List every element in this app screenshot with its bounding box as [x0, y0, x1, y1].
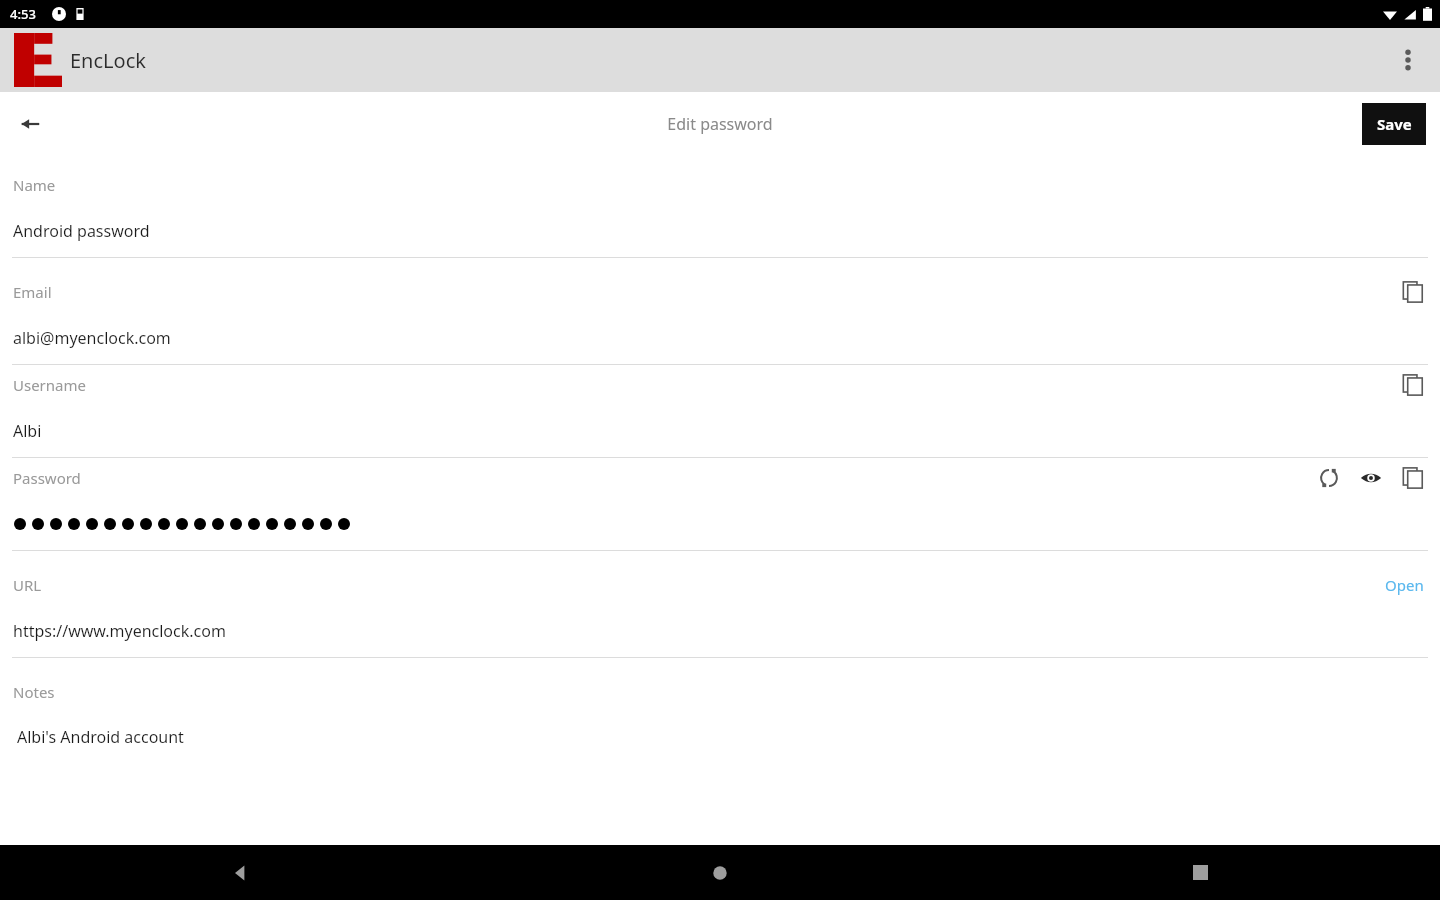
staticText: albi@myenclock.com: [13, 327, 171, 349]
staticText: Name: [13, 175, 56, 195]
staticText: Notes: [13, 682, 55, 702]
button[interactable]: Back: [0, 845, 480, 900]
staticText: https://www.myenclock.com: [13, 620, 226, 642]
button[interactable]: Open: [1379, 565, 1430, 605]
button[interactable]: More options: [1384, 36, 1432, 84]
button[interactable]: Back: [6, 100, 54, 148]
staticText: Email: [13, 282, 52, 302]
button[interactable]: Copy Email: [1392, 272, 1434, 312]
button[interactable]: Home: [480, 845, 960, 900]
button[interactable]: Copy password: [1392, 458, 1434, 498]
staticText: URL: [13, 575, 42, 595]
staticText: Android password: [13, 220, 150, 242]
button[interactable]: Recent apps: [960, 845, 1440, 900]
button[interactable]: Generate password: [1308, 458, 1350, 498]
staticText: Username: [13, 375, 86, 395]
staticText: Save: [1377, 114, 1412, 134]
staticText: Open: [1385, 575, 1424, 595]
staticText: Edit password: [667, 113, 773, 135]
staticText: Password: [13, 468, 81, 488]
staticText: Albi's Android account: [17, 726, 184, 748]
button[interactable]: Show password: [1350, 458, 1392, 498]
staticText: 4:53: [10, 5, 36, 23]
button[interactable]: Copy Username: [1392, 365, 1434, 405]
staticText: EncLock: [70, 47, 146, 74]
button[interactable]: Save: [1362, 103, 1426, 145]
staticText: Albi: [13, 420, 42, 442]
